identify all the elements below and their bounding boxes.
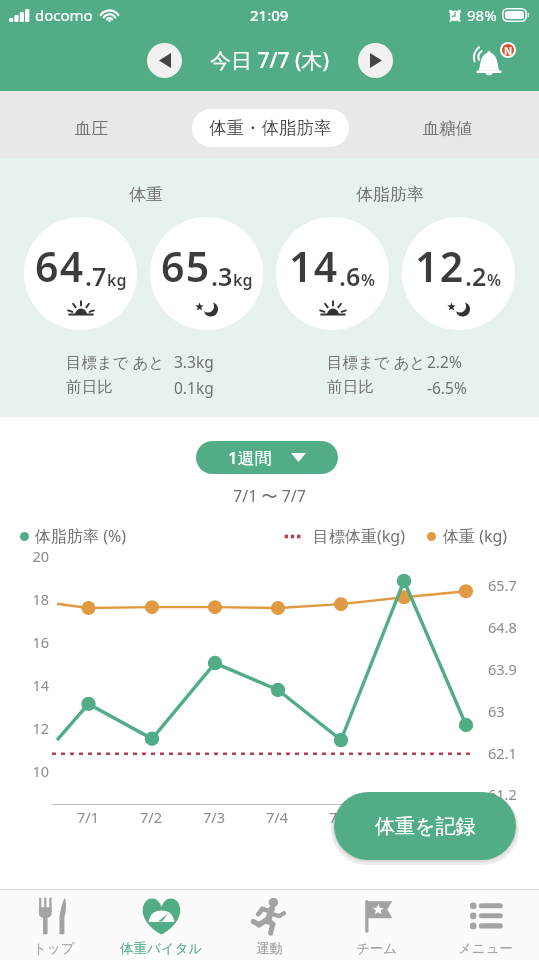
staticText: 64.8 xyxy=(488,617,517,637)
staticText: チーム xyxy=(356,940,398,957)
staticText: 今日 7/7 (木) xyxy=(210,46,330,75)
staticText: .7 xyxy=(85,259,107,293)
staticText: 前日比 xyxy=(66,377,113,397)
button[interactable]: 12 xyxy=(402,217,515,330)
button[interactable]: チーム xyxy=(323,890,431,960)
staticText: 98% xyxy=(467,5,497,25)
button[interactable]: トップ xyxy=(0,890,107,960)
button[interactable]: 65 xyxy=(150,217,263,330)
staticText: 65.7 xyxy=(488,575,517,595)
staticText: .2 xyxy=(465,259,487,293)
staticText: 3.3kg xyxy=(174,351,214,372)
staticText: 14 xyxy=(289,238,339,294)
staticText: 7/3 xyxy=(194,807,234,827)
staticText: .3 xyxy=(211,259,233,293)
button[interactable]: 14 xyxy=(276,217,389,330)
button[interactable]: Notifications xyxy=(465,36,515,86)
staticText: .6 xyxy=(339,259,361,293)
staticText: 20 xyxy=(9,546,49,566)
staticText: 0.1kg xyxy=(174,377,214,398)
staticText: 体重・体脂肪率 xyxy=(209,117,332,139)
staticText: 目標まで あと xyxy=(327,351,426,372)
staticText: kg xyxy=(107,269,127,291)
staticText: 7/2 xyxy=(131,807,171,827)
staticText: トップ xyxy=(33,940,75,957)
staticText: 7/5 xyxy=(320,807,360,827)
staticText: 12 xyxy=(9,718,49,738)
button[interactable]: 体重を記録 xyxy=(334,792,516,860)
staticText: メニュー xyxy=(458,940,513,957)
staticText: 65 xyxy=(161,238,211,294)
button[interactable]: 血圧 xyxy=(46,106,136,150)
staticText: 64 xyxy=(35,238,85,294)
staticText: 体重を記録 xyxy=(375,814,476,839)
button[interactable]: 64 xyxy=(24,217,137,330)
staticText: 血糖値 xyxy=(423,118,473,139)
staticText: 7/6 xyxy=(383,807,423,827)
staticText: N xyxy=(504,44,513,56)
staticText: 目標体重(kg) xyxy=(313,525,405,547)
staticText: 7/7 xyxy=(446,807,486,827)
staticText: % xyxy=(361,269,376,291)
staticText: 10 xyxy=(9,761,49,781)
staticText: 18 xyxy=(9,589,49,609)
staticText: 61.2 xyxy=(488,784,517,804)
staticText: 63 xyxy=(488,701,505,721)
staticText: 21:09 xyxy=(250,5,289,25)
staticText: 体重バイタル xyxy=(120,940,203,957)
button[interactable]: Previous day xyxy=(147,43,182,78)
staticText: -6.5% xyxy=(427,377,467,398)
staticText: 7/1 xyxy=(68,807,108,827)
button[interactable]: 運動 xyxy=(215,890,323,960)
staticText: 体重 xyxy=(106,184,186,205)
staticText: 2.2% xyxy=(427,351,462,372)
staticText: 血圧 xyxy=(75,118,108,139)
staticText: 体脂肪率 xyxy=(350,184,430,205)
button[interactable]: 体重バイタル xyxy=(107,890,215,960)
staticText: 目標まで あと xyxy=(66,351,165,372)
button[interactable]: 1週間 xyxy=(196,441,338,474)
staticText: 14 xyxy=(9,675,49,695)
staticText: docomo xyxy=(35,5,93,25)
staticText: 体脂肪率 (%) xyxy=(35,525,127,547)
staticText: 63.9 xyxy=(488,659,517,679)
staticText: 12 xyxy=(415,238,465,294)
staticText: % xyxy=(487,269,502,291)
staticText: 運動 xyxy=(256,940,283,957)
staticText: 16 xyxy=(9,632,49,652)
staticText: 前日比 xyxy=(327,377,374,397)
staticText: 7/1 〜 7/7 xyxy=(0,485,539,507)
staticText: 1週間 xyxy=(228,446,272,469)
staticText: 62.1 xyxy=(488,743,517,763)
staticText: kg xyxy=(233,269,253,291)
button[interactable]: 血糖値 xyxy=(403,106,493,150)
button[interactable]: 体重・体脂肪率 xyxy=(192,109,349,147)
staticText: 体重 (kg) xyxy=(443,525,508,547)
button[interactable]: メニュー xyxy=(431,890,539,960)
button[interactable]: Next day xyxy=(358,43,393,78)
staticText: 7/4 xyxy=(257,807,297,827)
